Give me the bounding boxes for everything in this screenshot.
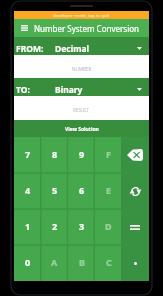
staticText: 1 (25, 220, 31, 232)
staticText: B (79, 256, 85, 268)
staticText: Number System Conversion (34, 23, 139, 34)
button[interactable]: 9 (67, 137, 94, 173)
staticText: 6 (79, 184, 85, 196)
button[interactable]: 0 (14, 245, 40, 281)
button[interactable]: Backspace (121, 137, 149, 173)
staticText: A (51, 256, 58, 268)
staticText: 9 (79, 148, 85, 160)
staticText: NUMBER (72, 66, 92, 72)
button[interactable]: 7 (14, 137, 40, 173)
staticText: 2 (52, 220, 58, 232)
button[interactable]: 6 (67, 173, 94, 209)
staticText: D (105, 220, 112, 232)
staticText: 5 (52, 184, 58, 196)
button[interactable]: 8 (40, 137, 67, 173)
staticText: developer mode, tap to quit (53, 12, 110, 18)
staticText: Decimal (55, 43, 90, 55)
button[interactable]: Swap conversion (121, 173, 149, 209)
button[interactable]: 1 (14, 209, 40, 245)
button[interactable]: 2 (40, 209, 67, 245)
staticText: 0 (25, 256, 31, 268)
button[interactable]: FROM: (14, 37, 149, 55)
staticText: 4 (25, 184, 31, 196)
button[interactable]: E (94, 173, 121, 209)
button[interactable]: F (94, 137, 121, 173)
staticText: C (106, 256, 112, 268)
button[interactable]: View Solution (14, 120, 149, 137)
staticText: View Solution (65, 126, 99, 133)
staticText: 3 (79, 220, 85, 232)
button[interactable]: Decimal point (121, 245, 149, 281)
button[interactable]: B (67, 245, 94, 281)
button[interactable]: 4 (14, 173, 40, 209)
button[interactable]: A (40, 245, 67, 281)
button[interactable]: Equals (121, 209, 149, 245)
staticText: 8 (52, 148, 58, 160)
button[interactable]: 5 (40, 173, 67, 209)
staticText: Binary (55, 84, 83, 96)
button[interactable]: TO: (14, 78, 149, 96)
staticText: E (106, 184, 112, 196)
staticText: FROM: (16, 43, 44, 55)
button[interactable]: C (94, 245, 121, 281)
button[interactable]: Menu (17, 19, 31, 37)
staticText: TO: (16, 84, 30, 96)
staticText: 7 (25, 148, 31, 160)
staticText: RESULT (73, 107, 90, 113)
button[interactable]: D (94, 209, 121, 245)
staticText: F (106, 148, 111, 160)
button[interactable]: 3 (67, 209, 94, 245)
